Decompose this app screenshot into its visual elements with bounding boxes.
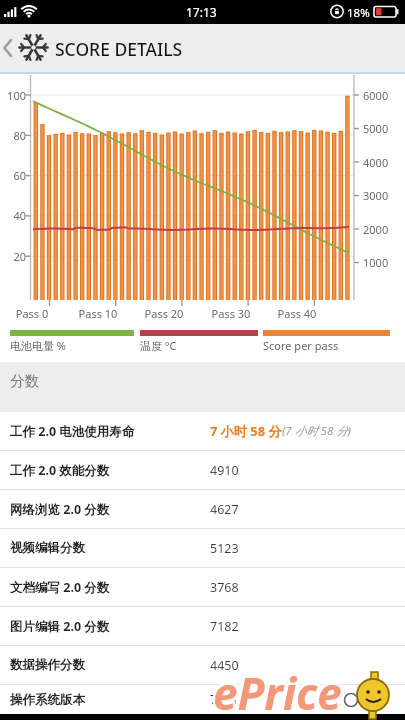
- staticText: 工作 2.0 电池使用寿命: [10, 423, 135, 440]
- button[interactable]: 网络浏览 2.0 分数: [0, 490, 405, 528]
- staticText: ePrice: [215, 661, 344, 720]
- staticText: ePrice: [215, 663, 344, 720]
- staticText: 数据操作分数: [10, 657, 85, 673]
- staticText: Pass 40: [267, 306, 327, 321]
- staticText: 电池电量 %: [10, 338, 67, 353]
- staticText: 2000: [363, 222, 389, 237]
- staticText: Pass 30: [201, 306, 261, 321]
- staticText: 视频编辑分数: [10, 540, 85, 556]
- button[interactable]: 数据操作分数: [0, 646, 405, 684]
- staticText: 7 小时 58 分: [210, 422, 282, 440]
- staticText: Score per pass: [263, 338, 339, 353]
- staticText: 3000: [363, 188, 389, 203]
- staticText: 4450: [210, 657, 239, 674]
- button[interactable]: 图片编辑 2.0 分数: [0, 607, 405, 645]
- staticText: 操作系统版本: [10, 692, 85, 708]
- staticText: 40: [0, 208, 26, 223]
- staticText: 5000: [363, 121, 389, 136]
- staticText: 80: [0, 128, 26, 143]
- staticText: SCORE DETAILS: [55, 37, 183, 61]
- staticText: 5123: [210, 540, 239, 557]
- staticText: 7.1.1: [210, 691, 239, 708]
- staticText: 60: [0, 168, 26, 183]
- staticText: Pass 10: [68, 306, 128, 321]
- staticText: 网络浏览 2.0 分数: [10, 501, 110, 518]
- staticText: 18%: [347, 5, 370, 21]
- button[interactable]: 操作系统版本: [0, 685, 405, 714]
- staticText: 17:13: [186, 4, 217, 20]
- staticText: 4000: [363, 155, 389, 170]
- staticText: 工作 2.0 效能分数: [10, 462, 110, 479]
- button[interactable]: 工作 2.0 电池使用寿命: [0, 412, 405, 450]
- staticText: 20: [0, 249, 26, 264]
- button[interactable]: 工作 2.0 效能分数: [0, 451, 405, 489]
- staticText: 7182: [210, 618, 239, 635]
- staticText: ePrice: [213, 661, 342, 720]
- staticText: 分数: [10, 372, 39, 390]
- staticText: ePrice: [215, 665, 344, 720]
- staticText: 图片编辑 2.0 分数: [10, 618, 110, 635]
- staticText: 1000: [363, 255, 389, 270]
- staticText: 3768: [210, 579, 239, 596]
- staticText: (7 小时 58 分): [282, 423, 352, 439]
- staticText: 文档编写 2.0 分数: [10, 579, 110, 596]
- staticText: 4627: [210, 501, 239, 518]
- button[interactable]: 视频编辑分数: [0, 529, 405, 567]
- button[interactable]: [0, 24, 52, 72]
- staticText: ePrice: [213, 663, 342, 720]
- staticText: Pass 20: [134, 306, 194, 321]
- staticText: ePrice: [211, 663, 340, 720]
- staticText: 100: [0, 88, 26, 103]
- staticText: 4910: [210, 462, 239, 479]
- staticText: Pass 0: [2, 306, 62, 321]
- button[interactable]: 文档编写 2.0 分数: [0, 568, 405, 606]
- staticText: ePrice: [211, 665, 340, 720]
- staticText: 温度 °C: [140, 338, 177, 353]
- staticText: 6000: [363, 88, 389, 103]
- staticText: ePrice: [213, 665, 342, 720]
- staticText: ePrice: [211, 661, 340, 720]
